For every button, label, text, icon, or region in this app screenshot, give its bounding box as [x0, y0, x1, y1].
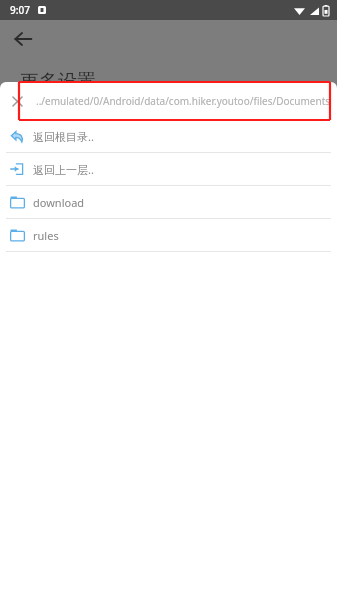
staticText: ../emulated/0/Android/data/com.hiker.you… — [36, 94, 331, 108]
staticText: download — [33, 195, 85, 210]
staticText: 9:07 — [10, 3, 30, 17]
staticText: rules — [33, 228, 59, 243]
button[interactable]: 返回根目录.. — [0, 120, 337, 153]
button[interactable]: Close — [4, 88, 30, 114]
button[interactable]: 返回上一层.. — [0, 153, 337, 186]
staticText: 返回上一层.. — [33, 162, 94, 177]
staticText: 返回根目录.. — [33, 129, 94, 144]
button[interactable]: Back — [8, 24, 38, 54]
button[interactable]: rules — [0, 219, 337, 252]
button[interactable]: download — [0, 186, 337, 219]
staticText: 更多设置 — [20, 70, 96, 94]
